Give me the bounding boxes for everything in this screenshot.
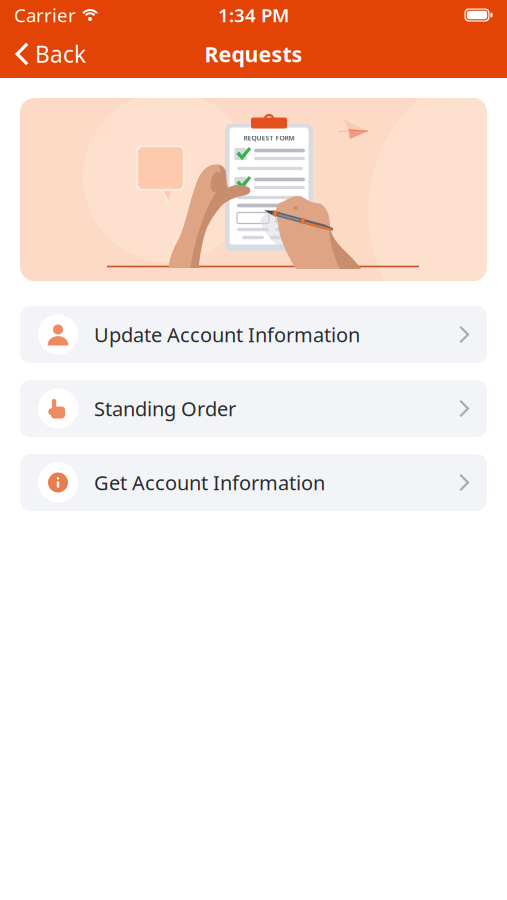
staticText: Back (35, 39, 86, 69)
staticText: Get Account Information (94, 469, 325, 496)
staticText: 1:34 PM (218, 3, 289, 27)
staticText: Requests (204, 40, 302, 68)
staticText: Carrier (14, 3, 76, 27)
button[interactable]: Standing Order (20, 380, 487, 437)
staticText: REQUEST FORM (243, 134, 294, 142)
button[interactable]: Get Account Information (20, 454, 487, 511)
button[interactable]: Back (0, 30, 101, 78)
button[interactable]: Update Account Information (20, 306, 487, 363)
staticText: Update Account Information (94, 321, 360, 348)
staticText: Standing Order (94, 395, 236, 422)
